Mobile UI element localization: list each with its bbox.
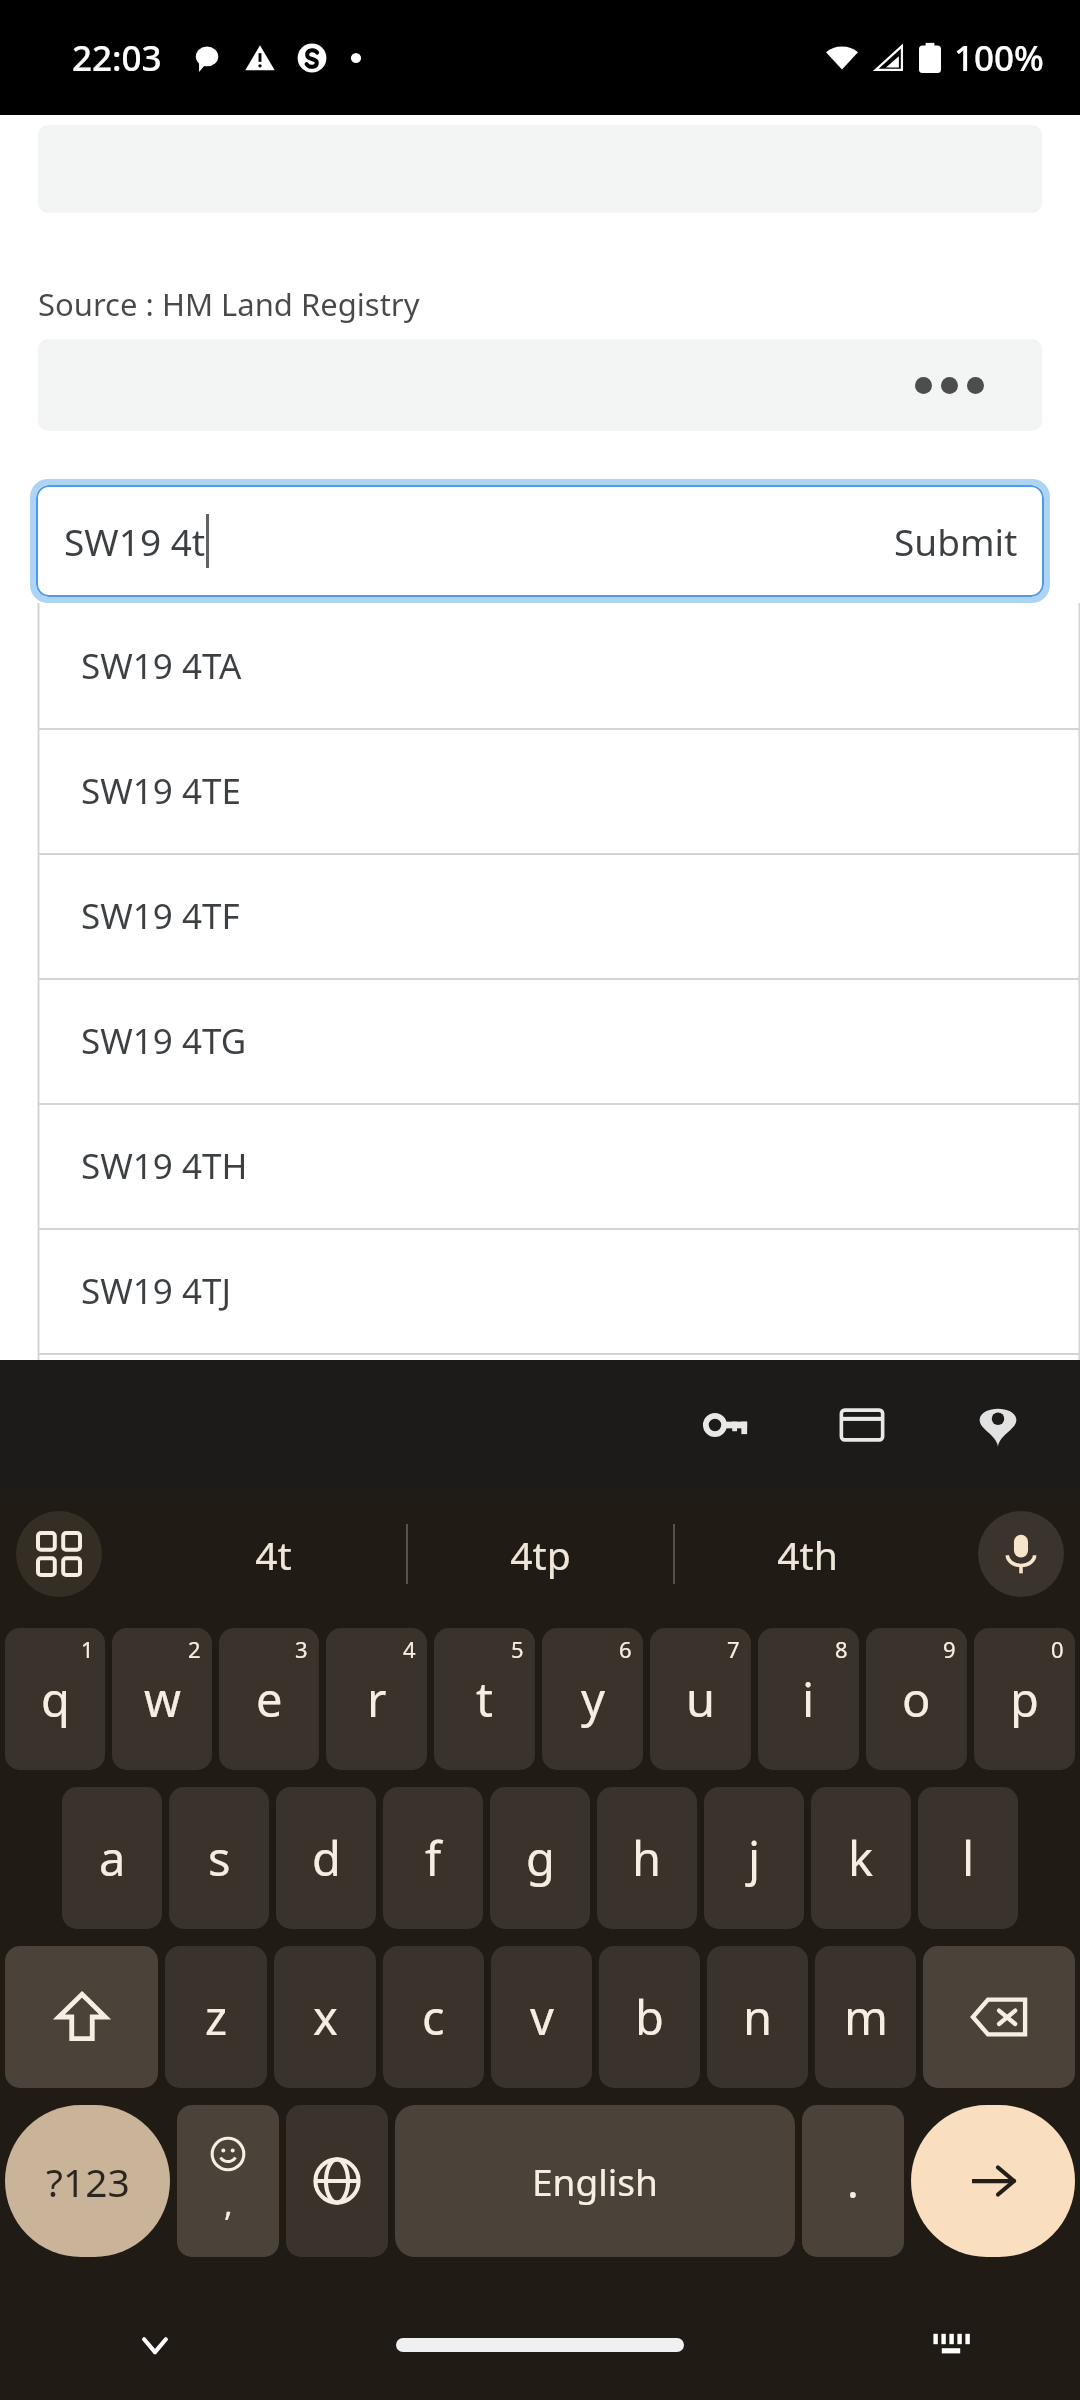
- staticText: Source : HM Land Registry: [38, 283, 420, 325]
- staticText: English: [532, 2156, 658, 2206]
- button[interactable]: 4t: [140, 1524, 406, 1584]
- button[interactable]: q: [5, 1628, 105, 1770]
- staticText: o: [902, 1667, 931, 1731]
- staticText: d: [312, 1826, 341, 1890]
- button[interactable]: i: [758, 1628, 859, 1770]
- button[interactable]: y: [542, 1628, 643, 1770]
- button[interactable]: [38, 339, 1042, 431]
- button[interactable]: English: [395, 2105, 795, 2257]
- button[interactable]: o: [866, 1628, 967, 1770]
- button[interactable]: 4tp: [408, 1524, 673, 1584]
- button[interactable]: t: [434, 1628, 535, 1770]
- button[interactable]: Enter: [911, 2105, 1075, 2257]
- button[interactable]: u: [650, 1628, 751, 1770]
- button[interactable]: Backspace: [923, 1946, 1075, 2088]
- button[interactable]: Change language: [286, 2105, 388, 2257]
- staticText: h: [632, 1826, 662, 1890]
- staticText: 4tp: [510, 1528, 571, 1581]
- button[interactable]: Voice input: [978, 1511, 1064, 1597]
- button[interactable]: w: [112, 1628, 212, 1770]
- staticText: SW19 4TH: [81, 1142, 248, 1190]
- staticText: z: [205, 1985, 228, 2049]
- button[interactable]: Switch keyboard: [918, 2312, 984, 2378]
- button[interactable]: p: [974, 1628, 1075, 1770]
- staticText: m: [844, 1985, 888, 2049]
- staticText: SW19 4t: [64, 516, 206, 566]
- button[interactable]: Passwords: [688, 1387, 764, 1463]
- staticText: SW19 4TL: [81, 1353, 240, 1360]
- staticText: 22:03: [72, 34, 162, 82]
- staticText: b: [635, 1985, 664, 2049]
- button[interactable]: SW19 4TE: [38, 728, 1080, 853]
- staticText: ,: [224, 2182, 233, 2226]
- button[interactable]: Emoji: [177, 2105, 279, 2257]
- button[interactable]: m: [815, 1946, 916, 2088]
- staticText: p: [1010, 1667, 1039, 1731]
- staticText: l: [962, 1826, 975, 1890]
- button[interactable]: Submit: [894, 516, 1018, 566]
- staticText: e: [256, 1667, 283, 1731]
- staticText: c: [422, 1985, 445, 2049]
- button[interactable]: r: [326, 1628, 427, 1770]
- button[interactable]: 4th: [675, 1524, 940, 1584]
- staticText: y: [581, 1667, 605, 1731]
- button[interactable]: j: [704, 1787, 804, 1929]
- staticText: SW19 4TA: [81, 642, 242, 690]
- button[interactable]: Open toolbar: [16, 1511, 102, 1597]
- button[interactable]: k: [811, 1787, 911, 1929]
- button[interactable]: .: [802, 2105, 904, 2257]
- staticText: u: [686, 1667, 716, 1731]
- button[interactable]: SW19 4TG: [38, 978, 1080, 1103]
- button[interactable]: SW19 4TJ: [38, 1228, 1080, 1353]
- staticText: 6: [619, 1634, 632, 1664]
- button[interactable]: Hide keyboard: [122, 2312, 188, 2378]
- staticText: SW19 4TJ: [81, 1267, 231, 1315]
- staticText: 9: [943, 1634, 956, 1664]
- button[interactable]: h: [597, 1787, 697, 1929]
- button[interactable]: z: [165, 1946, 267, 2088]
- staticText: k: [848, 1826, 874, 1890]
- staticText: s: [208, 1826, 231, 1890]
- staticText: g: [526, 1826, 555, 1890]
- staticText: v: [530, 1985, 554, 2049]
- staticText: 5: [511, 1634, 524, 1664]
- button[interactable]: Location: [960, 1387, 1036, 1463]
- staticText: .: [847, 2151, 859, 2211]
- button[interactable]: s: [169, 1787, 269, 1929]
- staticText: i: [802, 1667, 815, 1731]
- button[interactable]: g: [490, 1787, 590, 1929]
- button[interactable]: d: [276, 1787, 376, 1929]
- staticText: 7: [727, 1634, 740, 1664]
- staticText: 100%: [954, 34, 1044, 82]
- button[interactable]: v: [491, 1946, 592, 2088]
- button[interactable]: SW19 4TH: [38, 1103, 1080, 1228]
- button[interactable]: a: [62, 1787, 162, 1929]
- staticText: t: [476, 1667, 493, 1731]
- button[interactable]: SW19 4TF: [38, 853, 1080, 978]
- staticText: 4th: [777, 1528, 838, 1581]
- staticText: x: [313, 1985, 338, 2049]
- staticText: SW19 4TF: [81, 892, 240, 940]
- button[interactable]: f: [383, 1787, 483, 1929]
- button[interactable]: [396, 2338, 684, 2352]
- button[interactable]: Payment cards: [824, 1387, 900, 1463]
- button[interactable]: b: [599, 1946, 700, 2088]
- staticText: f: [425, 1826, 442, 1890]
- button[interactable]: SW19 4TL: [38, 1353, 1080, 1360]
- staticText: SW19 4TE: [81, 767, 241, 815]
- button[interactable]: SW19 4t: [36, 485, 1044, 597]
- staticText: 8: [835, 1634, 848, 1664]
- button[interactable]: e: [219, 1628, 319, 1770]
- button[interactable]: SW19 4TA: [38, 603, 1080, 728]
- button[interactable]: c: [383, 1946, 484, 2088]
- staticText: a: [99, 1826, 126, 1890]
- staticText: n: [743, 1985, 773, 2049]
- staticText: r: [367, 1667, 387, 1731]
- staticText: ?123: [46, 2155, 130, 2208]
- button[interactable]: x: [274, 1946, 376, 2088]
- button[interactable]: l: [918, 1787, 1018, 1929]
- button[interactable]: Shift: [5, 1946, 158, 2088]
- button[interactable]: ?123: [5, 2105, 170, 2257]
- button[interactable]: n: [707, 1946, 808, 2088]
- staticText: 0: [1051, 1634, 1064, 1664]
